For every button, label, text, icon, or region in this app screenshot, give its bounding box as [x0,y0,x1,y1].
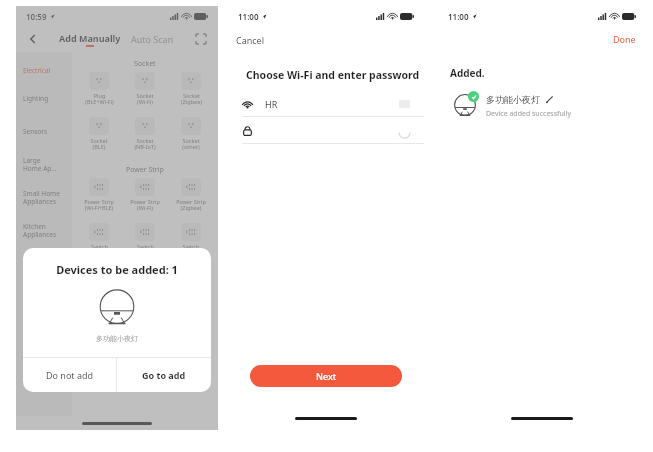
staticText: Lighting [23,94,49,103]
button[interactable]: G... S... [23,346,72,379]
button[interactable]: Cancel [236,34,265,46]
button[interactable]: 多功能小夜灯 [452,92,646,120]
staticText: Power Strip (Wi-Fi+BLE) [84,198,114,212]
button[interactable]: Plug (BLE+Wi-Fi) [76,72,122,106]
button[interactable]: Switch (BLE) [122,223,168,257]
staticText: 11:00 [448,11,469,22]
button[interactable]: Large Home Ap... [23,148,72,181]
button[interactable]: Lighting [23,82,72,115]
staticText: Large Home Ap... [23,156,57,173]
staticText: Switch (BLE) [137,243,154,257]
staticText: Switch (other) [182,243,200,257]
button[interactable]: Small Home Appliances [23,181,72,214]
button[interactable] [242,117,410,143]
button[interactable]: Kitchen Appliances [23,214,72,247]
button[interactable]: Add Manually [59,32,121,47]
button[interactable]: Socket (NB-IoT) [122,117,168,151]
button[interactable]: Scan QR code [194,32,208,46]
staticText: Sensors [23,127,48,136]
staticText: Small Home Appliances [23,189,60,206]
button[interactable]: Switch (other) [168,223,214,257]
button[interactable]: Done [613,33,636,45]
staticText: Choose Wi-Fi and enter password [246,68,420,82]
staticText: 多功能小夜灯 [486,94,540,105]
button[interactable]: HR [242,92,410,116]
button[interactable]: Switch (Wi-Fi) [76,223,122,257]
button[interactable]: Sensors [23,115,72,148]
staticText: Power Strip (Wi-Fi) [130,198,160,212]
staticText: Devices to be added: 1 [23,262,211,277]
staticText: 11:00 [238,11,259,22]
staticText: Added. [450,66,485,80]
button[interactable]: Socket (Wi-Fi) [122,72,168,106]
button[interactable]: Power Strip (Wi-Fi) [122,178,168,212]
staticText: Next [316,370,337,382]
staticText: 多功能小夜灯 [23,334,211,343]
staticText: HR [265,98,278,110]
button[interactable]: Power Strip (Zigbee) [168,178,214,212]
button[interactable]: Socket (Zigbee) [168,72,214,106]
staticText: Device added successfully [486,109,571,119]
staticText: Go to add [142,369,186,381]
staticText: 10:59 [26,11,47,22]
button[interactable]: Rename device [545,95,554,104]
staticText: G... S... [23,354,33,371]
button[interactable]: Auto Scan [131,33,174,45]
staticText: Add Manually [59,32,121,44]
button[interactable]: Go to add [117,358,211,392]
button[interactable]: Exercise & Health [23,247,72,280]
staticText: Kitchen Appliances [23,222,57,239]
button[interactable]: Socket (other) [168,117,214,151]
staticText: Socket (Wi-Fi) [136,92,154,106]
button[interactable]: Next [250,365,402,387]
button[interactable]: Power Strip (Wi-Fi+BLE) [76,178,122,212]
staticText: Socket (NB-IoT) [134,137,156,151]
button[interactable]: Back [26,32,40,46]
button[interactable]: Electrical [23,58,72,82]
staticText: Power Strip (Zigbee) [176,198,206,212]
staticText: Socket (BLE) [90,137,108,151]
staticText: Power Strip [126,165,164,175]
button[interactable]: Do not add [23,358,116,392]
button[interactable]: Socket (BLE) [76,117,122,151]
staticText: Do not add [46,369,94,381]
staticText: Socket (other) [182,137,200,151]
staticText: Electrical [23,66,51,75]
staticText: Plug (BLE+Wi-Fi) [85,92,114,106]
staticText: Socket (Zigbee) [181,92,202,106]
staticText: Socket [134,59,156,69]
staticText: Switch (Wi-Fi) [91,243,108,257]
